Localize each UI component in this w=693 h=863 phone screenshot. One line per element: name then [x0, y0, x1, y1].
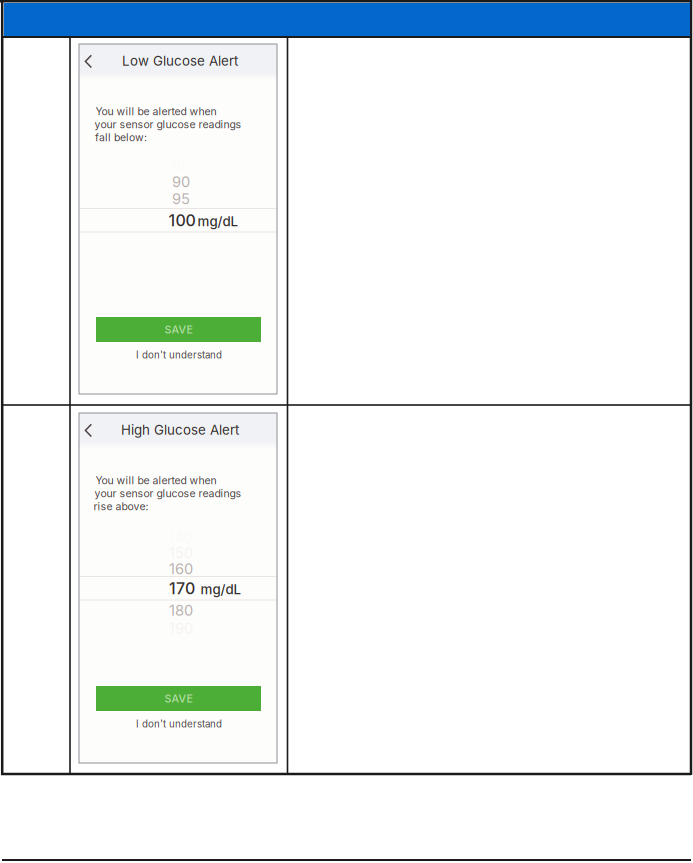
button[interactable]: SAVE: [96, 686, 261, 711]
staticText: mg/dL: [200, 581, 241, 597]
staticText: Low Glucose Alert: [122, 53, 238, 69]
staticText: I don't understand: [136, 718, 222, 730]
staticText: You will be alerted when: [95, 105, 216, 118]
staticText: 150: [169, 544, 193, 562]
staticText: 95: [172, 190, 190, 208]
staticText: 170: [169, 579, 195, 598]
staticText: 100: [168, 211, 195, 230]
button[interactable]: Back: [77, 416, 99, 444]
staticText: You will be alerted when: [95, 474, 216, 487]
button[interactable]: I don't understand: [124, 346, 234, 364]
staticText: your sensor glucose readings: [94, 118, 241, 131]
staticText: SAVE: [164, 323, 192, 336]
button[interactable]: I don't understand: [124, 715, 234, 733]
staticText: 160: [169, 560, 193, 578]
button[interactable]: SAVE: [96, 317, 261, 342]
staticText: mg/dL: [197, 213, 238, 229]
staticText: 190: [169, 620, 193, 637]
staticText: High Glucose Alert: [121, 422, 239, 438]
staticText: I don't understand: [136, 349, 222, 361]
staticText: your sensor glucose readings: [94, 487, 241, 500]
staticText: 90: [172, 173, 190, 191]
staticText: rise above:: [93, 500, 148, 513]
button[interactable]: Back: [77, 47, 99, 75]
staticText: 180: [169, 602, 193, 619]
staticText: fall below:: [95, 131, 147, 144]
staticText: SAVE: [164, 692, 192, 705]
